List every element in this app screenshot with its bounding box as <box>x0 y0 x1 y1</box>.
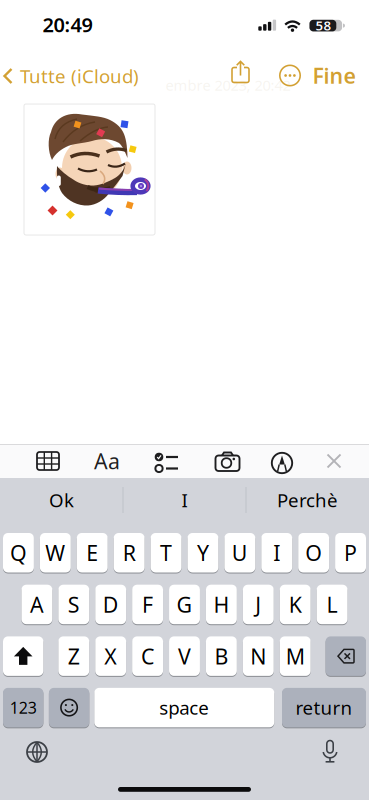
staticText: Y <box>197 539 209 567</box>
staticText: Perchè <box>277 488 338 512</box>
button[interactable]: F <box>132 585 163 624</box>
button[interactable]: Checklist <box>153 450 179 474</box>
button[interactable]: P <box>335 533 366 572</box>
button[interactable]: H <box>206 585 237 624</box>
button[interactable]: Fine <box>312 61 355 90</box>
button[interactable]: G <box>169 585 200 624</box>
button[interactable]: Share <box>227 60 253 90</box>
staticText: D <box>103 590 119 619</box>
staticText: X <box>104 642 117 670</box>
staticText: Aa <box>94 447 120 475</box>
staticText: W <box>45 539 65 567</box>
staticText: return <box>295 695 352 720</box>
button[interactable]: E <box>77 533 108 572</box>
staticText: S <box>68 590 80 619</box>
button[interactable]: O <box>298 533 329 572</box>
staticText: embre 2023, 20:42 <box>165 75 290 95</box>
button[interactable]: 123 <box>3 688 43 727</box>
button[interactable]: T <box>151 533 181 572</box>
staticText: G <box>176 590 192 619</box>
button[interactable]: Dismiss keyboard <box>325 452 342 469</box>
button[interactable]: A <box>21 585 52 624</box>
staticText: B <box>214 642 228 670</box>
staticText: F <box>142 590 153 619</box>
staticText: space <box>159 695 209 720</box>
button[interactable]: R <box>114 533 145 572</box>
staticText: Tutte (iCloud) <box>20 64 139 88</box>
button[interactable]: space <box>94 688 274 727</box>
staticText: O <box>305 539 322 567</box>
staticText: I <box>273 539 280 567</box>
button[interactable]: W <box>40 533 71 572</box>
staticText: Ok <box>49 488 74 512</box>
button[interactable]: N <box>243 636 274 676</box>
staticText: H <box>213 590 229 619</box>
staticText: I <box>181 488 187 512</box>
button[interactable]: Q <box>3 533 34 572</box>
staticText: Z <box>68 642 80 670</box>
button[interactable]: Y <box>187 533 218 572</box>
button[interactable]: C <box>132 636 163 676</box>
button[interactable]: Tutte (iCloud) <box>3 64 139 88</box>
staticText: E <box>86 539 98 567</box>
button[interactable]: S <box>58 585 89 624</box>
staticText: R <box>123 539 136 567</box>
staticText: A <box>30 590 44 619</box>
button[interactable]: Z <box>58 636 89 676</box>
button[interactable]: Ok <box>11 483 111 517</box>
staticText: C <box>141 642 154 670</box>
button[interactable]: Emoji <box>49 688 89 727</box>
staticText: P <box>344 539 357 567</box>
button[interactable]: I <box>134 483 234 517</box>
button[interactable]: D <box>95 585 126 624</box>
button[interactable]: Shift <box>3 636 43 676</box>
button[interactable]: V <box>169 636 200 676</box>
button[interactable]: Next keyboard <box>25 740 49 764</box>
button[interactable]: X <box>95 636 126 676</box>
button[interactable]: B <box>206 636 237 676</box>
staticText: 58 <box>315 16 331 34</box>
button[interactable]: Perchè <box>257 483 357 517</box>
button[interactable]: M <box>280 636 311 676</box>
button[interactable]: Dictation <box>320 739 340 765</box>
button[interactable]: K <box>280 585 311 624</box>
button[interactable]: Camera <box>214 450 242 474</box>
staticText: M <box>286 642 305 670</box>
button[interactable]: U <box>224 533 255 572</box>
staticText: 20:49 <box>42 11 92 38</box>
button[interactable]: return <box>282 688 366 727</box>
button[interactable]: Delete <box>326 636 366 676</box>
button[interactable]: Markup <box>270 451 294 475</box>
staticText: 123 <box>10 697 37 718</box>
button[interactable]: More <box>278 63 302 87</box>
button[interactable]: Insert table <box>35 449 61 473</box>
staticText: L <box>327 590 338 619</box>
button[interactable]: Format <box>94 447 120 475</box>
staticText: V <box>178 642 191 670</box>
button[interactable]: L <box>317 585 347 624</box>
staticText: T <box>160 539 172 567</box>
staticText: N <box>250 642 266 670</box>
staticText: U <box>232 539 248 567</box>
staticText: J <box>255 590 261 619</box>
staticText: K <box>289 590 302 619</box>
button[interactable]: I <box>261 533 292 572</box>
button[interactable]: J <box>243 585 274 624</box>
staticText: Q <box>10 539 27 567</box>
staticText: Fine <box>312 61 355 90</box>
